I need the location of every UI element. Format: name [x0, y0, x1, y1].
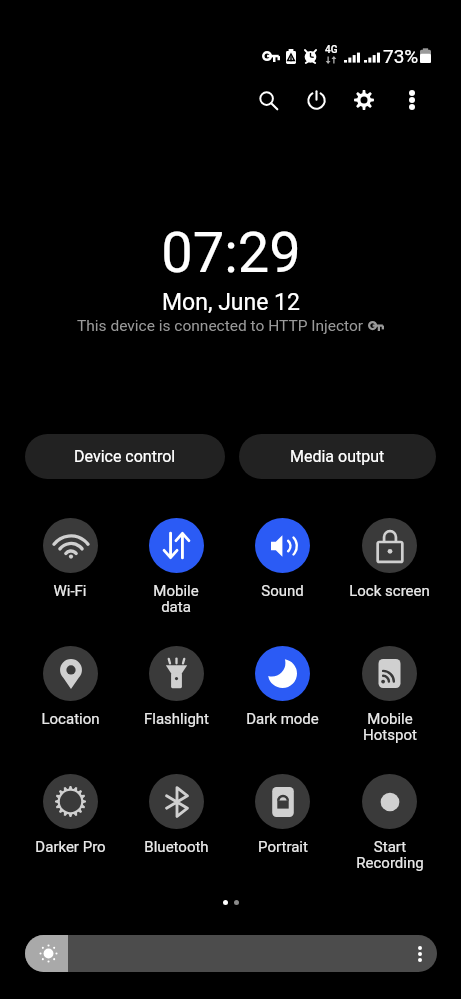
- button[interactable]: Flashlight: [123, 646, 229, 728]
- button[interactable]: Bluetooth: [123, 774, 229, 856]
- button[interactable]: Start Recording: [336, 774, 443, 872]
- staticText: Darker Pro: [35, 838, 106, 856]
- button[interactable]: Darker Pro: [17, 774, 123, 856]
- button[interactable]: Device control: [25, 434, 225, 479]
- button[interactable]: Location: [17, 646, 123, 728]
- button[interactable]: Settings: [340, 76, 388, 124]
- staticText: Mobile data: [153, 582, 199, 616]
- button[interactable]: Portrait: [229, 774, 336, 856]
- staticText: Mon, June 12: [162, 289, 300, 316]
- button[interactable]: [25, 935, 437, 972]
- staticText: Mobile Hotspot: [363, 710, 417, 744]
- staticText: Portrait: [258, 838, 308, 856]
- staticText: Device control: [74, 447, 176, 466]
- button[interactable]: Dark mode: [229, 646, 336, 728]
- button[interactable]: Sound: [229, 518, 336, 600]
- staticText: 4G: [325, 44, 338, 56]
- button[interactable]: Wi-Fi: [17, 518, 123, 600]
- button[interactable]: Power: [292, 76, 340, 124]
- staticText: Bluetooth: [144, 838, 209, 856]
- staticText: Start Recording: [356, 838, 424, 872]
- staticText: Media output: [290, 447, 385, 466]
- staticText: Wi-Fi: [53, 582, 87, 600]
- button[interactable]: Mobile Hotspot: [336, 646, 443, 744]
- button[interactable]: More options: [388, 76, 436, 124]
- staticText: Sound: [261, 582, 304, 600]
- button[interactable]: Search: [244, 76, 292, 124]
- staticText: 07:29: [161, 220, 301, 286]
- button[interactable]: Mobile data: [123, 518, 229, 616]
- staticText: Lock screen: [349, 582, 430, 600]
- staticText: 73%: [383, 45, 419, 67]
- staticText: Dark mode: [246, 710, 319, 728]
- staticText: This device is connected to HTTP Injecto…: [77, 317, 364, 335]
- staticText: Location: [41, 710, 100, 728]
- button[interactable]: Media output: [239, 434, 436, 479]
- staticText: Flashlight: [144, 710, 209, 728]
- button[interactable]: Lock screen: [336, 518, 443, 600]
